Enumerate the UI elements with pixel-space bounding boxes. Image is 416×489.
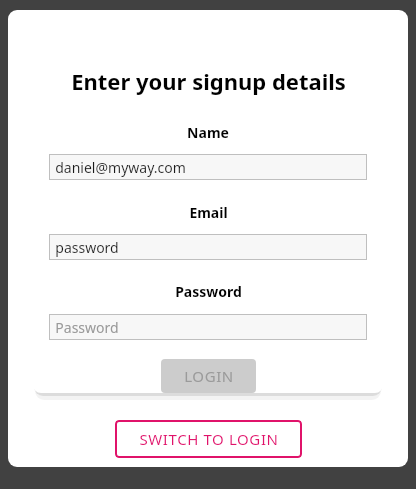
button[interactable]: Password (49, 314, 367, 340)
staticText: SWITCH TO LOGIN (139, 429, 279, 449)
button[interactable]: password (49, 234, 367, 260)
staticText: LOGIN (184, 366, 234, 386)
staticText: Enter your signup details (71, 66, 346, 96)
staticText: Name (187, 123, 229, 142)
staticText: Password (175, 282, 242, 301)
staticText: daniel@myway.com (55, 158, 186, 177)
button[interactable]: SWITCH TO LOGIN (115, 420, 302, 458)
staticText: Email (189, 203, 228, 222)
staticText: Password (55, 318, 119, 337)
staticText: password (55, 238, 119, 257)
button[interactable]: daniel@myway.com (49, 154, 367, 180)
button[interactable]: LOGIN (161, 359, 256, 393)
